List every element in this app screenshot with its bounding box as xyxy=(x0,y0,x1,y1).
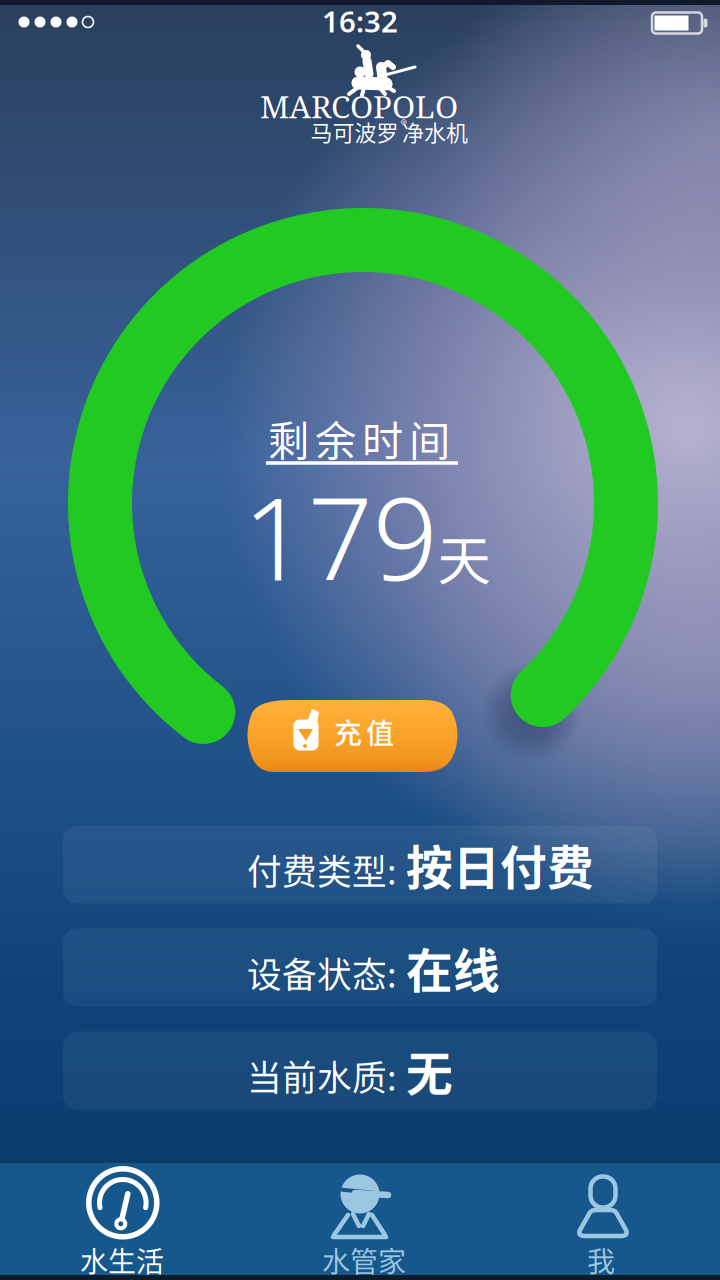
staticText: MARCOPOLO xyxy=(260,85,458,127)
staticText: 设备状态: xyxy=(247,948,397,998)
button[interactable]: 水管家 xyxy=(240,1163,480,1280)
button[interactable]: 水生活 xyxy=(0,1163,240,1280)
staticText: 马可波罗 xyxy=(310,116,398,147)
staticText: 充值 xyxy=(334,711,394,752)
staticText: 179 xyxy=(242,460,437,612)
staticText: 无 xyxy=(406,1037,453,1104)
staticText: 按日付费 xyxy=(406,831,594,898)
staticText: 当前水质: xyxy=(247,1051,397,1101)
button[interactable]: 我 xyxy=(480,1163,720,1280)
staticText: 剩余时间 xyxy=(268,408,450,468)
staticText: 我 xyxy=(587,1240,615,1280)
staticText: 净水机 xyxy=(402,116,468,147)
button[interactable]: 充值 xyxy=(246,700,452,773)
staticText: 在线 xyxy=(406,934,500,1001)
staticText: 水管家 xyxy=(322,1240,406,1280)
staticText: 16:32 xyxy=(322,1,398,40)
staticText: 水生活 xyxy=(80,1240,164,1280)
staticText: ® xyxy=(400,114,406,134)
staticText: 天 xyxy=(437,518,490,596)
staticText: 付费类型: xyxy=(247,845,397,895)
